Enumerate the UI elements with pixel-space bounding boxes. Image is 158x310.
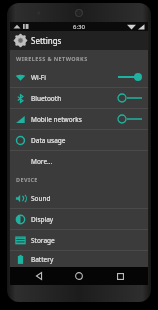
staticText: Battery xyxy=(31,255,54,264)
button[interactable]: Display xyxy=(10,209,148,229)
staticText: Data usage xyxy=(31,136,66,145)
button[interactable]: Mobile networks xyxy=(10,109,148,129)
staticText: More... xyxy=(31,157,53,166)
button[interactable]: Settings xyxy=(10,31,148,50)
staticText: Mobile networks xyxy=(31,115,82,124)
staticText: Sound xyxy=(31,194,51,203)
button[interactable]: Home xyxy=(67,267,91,285)
staticText: Bluetooth xyxy=(31,94,62,103)
other: Mobile networks off xyxy=(117,113,143,125)
staticText: 6:30 xyxy=(73,23,85,31)
button[interactable]: Back xyxy=(27,267,51,285)
staticText: Settings xyxy=(31,35,62,46)
staticText: Display xyxy=(31,215,54,224)
staticText: Storage xyxy=(31,236,55,245)
other: Bluetooth off xyxy=(117,92,143,104)
button[interactable]: Data usage xyxy=(10,130,148,150)
button[interactable]: Recent apps xyxy=(108,267,132,285)
button[interactable]: Wi-Fi xyxy=(10,67,148,87)
button[interactable]: Sound xyxy=(10,188,148,208)
button[interactable]: Storage xyxy=(10,230,148,250)
staticText: WIRELESS & NETWORKS xyxy=(16,55,88,62)
button[interactable]: Bluetooth xyxy=(10,88,148,108)
button[interactable]: Battery xyxy=(10,251,148,267)
button[interactable]: More... xyxy=(10,151,148,171)
staticText: DEVICE xyxy=(16,176,38,183)
other: Wi-Fi on xyxy=(117,71,143,83)
staticText: Wi-Fi xyxy=(31,73,46,82)
